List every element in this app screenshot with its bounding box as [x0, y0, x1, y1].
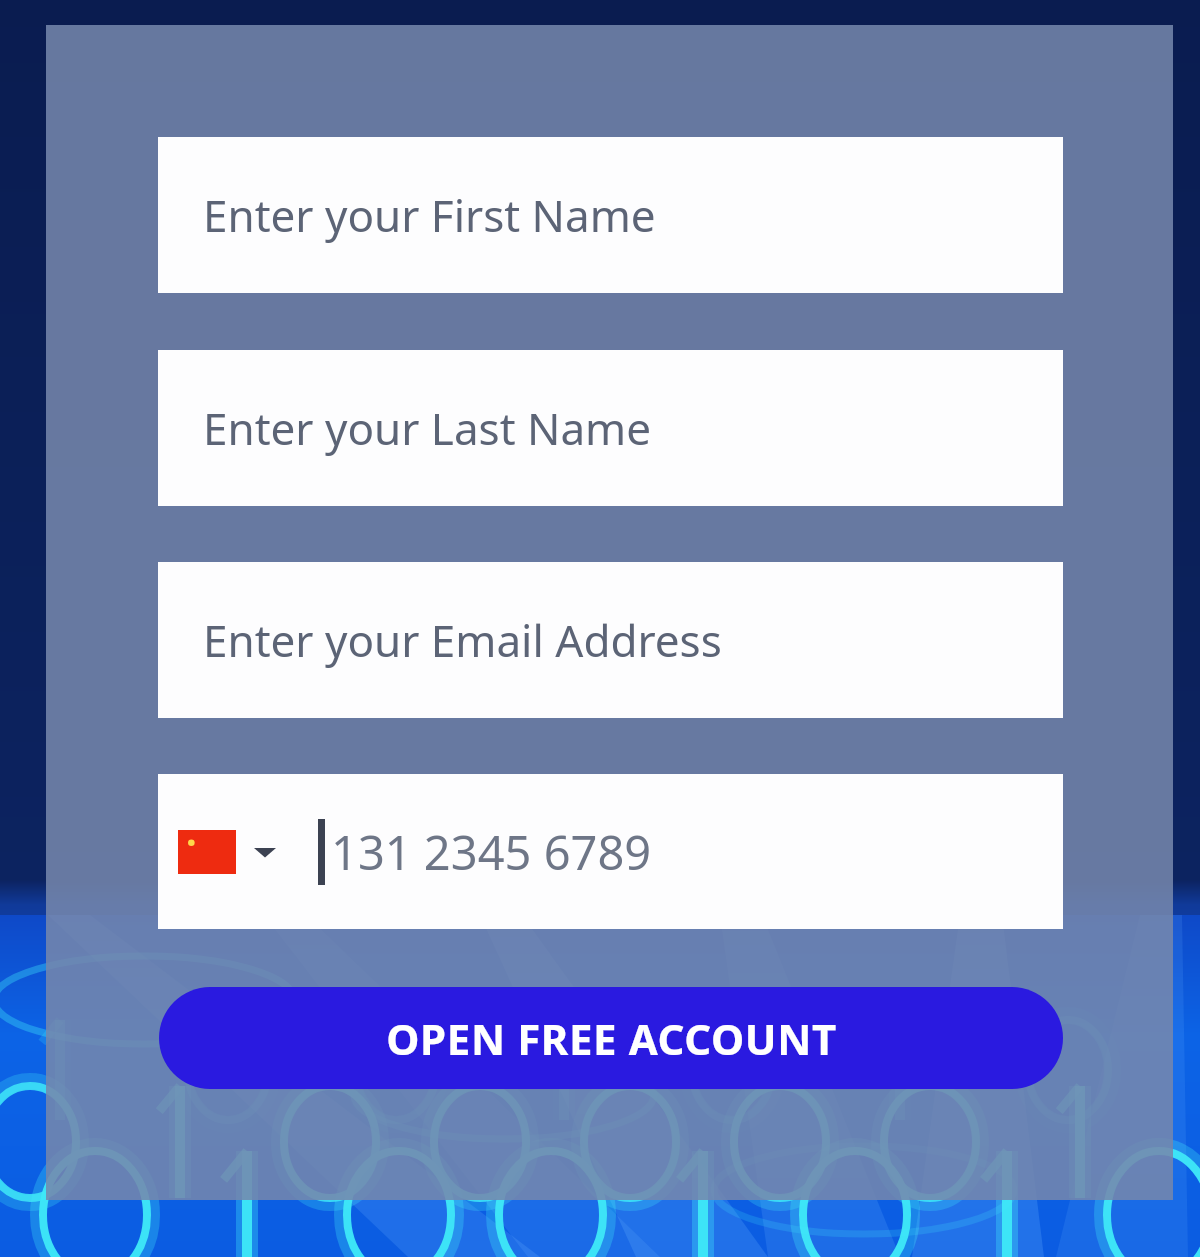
button[interactable]: Enter your First Name — [158, 137, 1063, 293]
staticText: Enter your First Name — [203, 185, 656, 245]
other: Select country — [254, 844, 276, 860]
staticText: Enter your Last Name — [203, 398, 652, 458]
button[interactable]: Country code China — [158, 774, 1063, 929]
button[interactable]: OPEN FREE ACCOUNT — [159, 987, 1063, 1089]
other: Country code China — [178, 830, 236, 874]
button[interactable]: Enter your Email Address — [158, 562, 1063, 718]
staticText: Enter your Email Address — [203, 610, 722, 670]
staticText: 131 2345 6789 — [331, 820, 652, 884]
button[interactable]: Enter your Last Name — [158, 350, 1063, 506]
staticText: OPEN FREE ACCOUNT — [386, 1010, 837, 1067]
